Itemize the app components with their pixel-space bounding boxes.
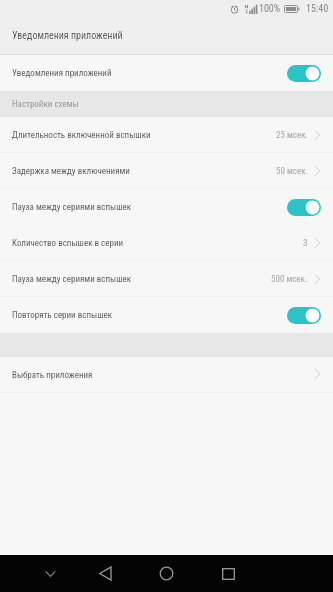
button[interactable]: Повторять серии вспышек	[0, 297, 333, 333]
button[interactable]: Выбрать приложения	[0, 357, 333, 393]
button[interactable]: Hide keyboard	[28, 555, 72, 592]
staticText: 15:40	[306, 3, 329, 15]
button[interactable]: Количество вспышек в серии	[0, 225, 333, 261]
staticText: Пауза между сериями вспышек	[12, 202, 132, 213]
staticText: Уведомления приложений	[12, 68, 112, 79]
staticText: Количество вспышек в серии	[12, 238, 124, 249]
staticText: Длительность включенной вспышки	[12, 130, 151, 141]
staticText: 100%	[259, 3, 281, 15]
staticText: Выбрать приложения	[12, 370, 93, 381]
staticText: 500 мсек.	[271, 274, 308, 285]
staticText: Настройки схемы	[12, 99, 79, 110]
button[interactable]: Пауза между сериями вспышек	[0, 261, 333, 297]
staticText: 3	[303, 238, 308, 249]
button[interactable]: Задержка между включениями	[0, 153, 333, 189]
staticText: Повторять серии вспышек	[12, 310, 113, 321]
button[interactable]: Home	[139, 555, 193, 592]
staticText: Уведомления приложений	[12, 30, 123, 42]
button[interactable]: Уведомления приложений	[0, 55, 333, 91]
button[interactable]: Длительность включенной вспышки	[0, 117, 333, 153]
button[interactable]: Recents	[201, 555, 255, 592]
staticText: Задержка между включениями	[12, 166, 130, 177]
button[interactable]: Back	[78, 555, 132, 592]
staticText: 25 мсек.	[276, 130, 308, 141]
staticText: Пауза между сериями вспышек	[12, 274, 132, 285]
staticText: 50 мсек.	[276, 166, 308, 177]
button[interactable]: Пауза между сериями вспышек	[0, 189, 333, 225]
